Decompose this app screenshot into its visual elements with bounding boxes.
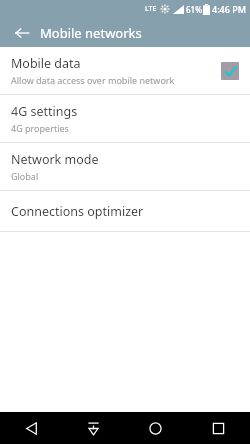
staticText: 61% [186, 4, 202, 15]
staticText: 4G settings [11, 103, 78, 120]
staticText: 4G properties [11, 122, 69, 134]
staticText: LTE [145, 4, 157, 14]
staticText: Allow data access over mobile network [11, 74, 175, 86]
staticText: Mobile data [11, 55, 81, 72]
button[interactable]: Home [124, 412, 187, 444]
staticText: 4:46 PM [212, 3, 246, 15]
staticText: Mobile networks [40, 24, 142, 42]
button[interactable]: Recents [187, 412, 250, 444]
staticText: Global [11, 170, 39, 182]
staticText: Connections optimizer [11, 203, 144, 220]
button[interactable]: 4G settings [0, 95, 250, 142]
button[interactable]: Mobile data toggle [221, 62, 239, 80]
button[interactable]: Connections optimizer [0, 191, 250, 231]
button[interactable]: Network mode [0, 143, 250, 190]
button[interactable]: Back [8, 19, 36, 47]
button[interactable]: Hide [62, 412, 124, 444]
button[interactable]: Mobile data [0, 47, 250, 94]
button[interactable]: Back [0, 412, 62, 444]
staticText: Network mode [11, 151, 99, 168]
